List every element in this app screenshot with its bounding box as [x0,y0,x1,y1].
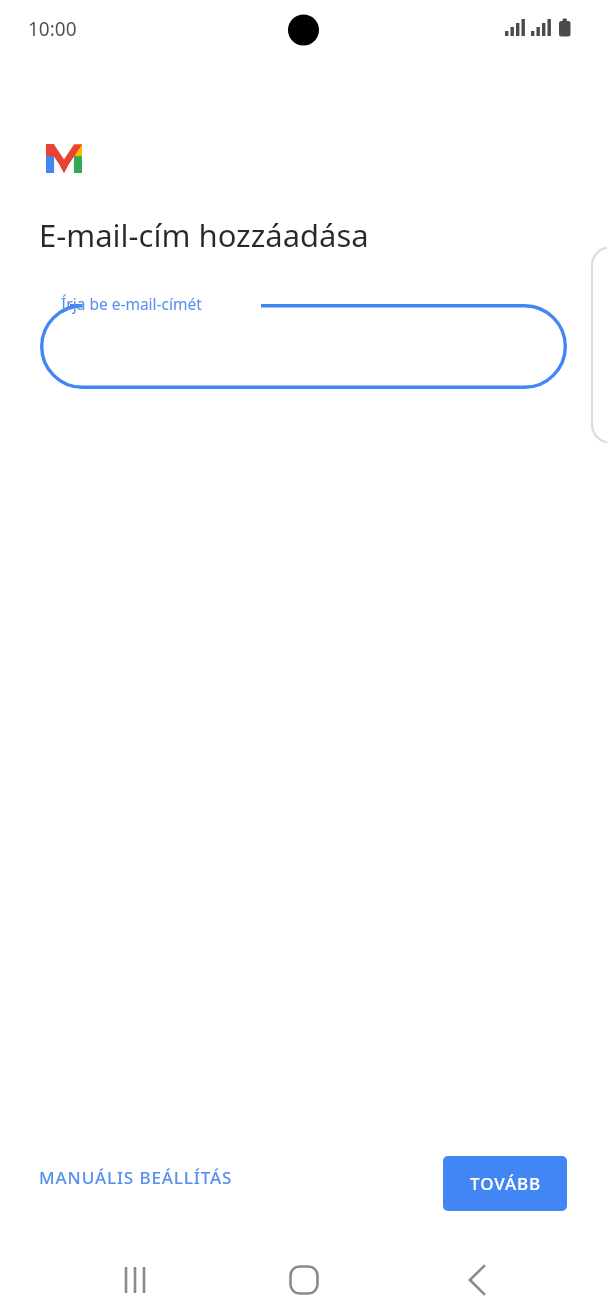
button[interactable]: MANUÁLIS BEÁLLÍTÁS [26,1157,246,1198]
staticText: Írja be e-mail-címét [61,293,202,314]
button[interactable]: Back [440,1256,508,1304]
button[interactable]: TOVÁBB [443,1156,567,1211]
button[interactable]: Írja be e-mail-címét [40,304,567,389]
staticText: MANUÁLIS BEÁLLÍTÁS [39,1166,233,1189]
button[interactable]: Home [270,1256,338,1304]
staticText: TOVÁBB [470,1172,541,1195]
button[interactable]: Recents [101,1256,169,1304]
staticText: 10:00 [28,16,77,42]
staticText: E-mail-cím hozzáadása [39,214,369,256]
